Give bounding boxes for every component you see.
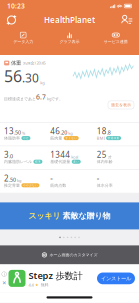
button[interactable]: - [93, 170, 139, 193]
staticText: 46 [50, 126, 60, 136]
staticText: 推定骨量 [4, 183, 20, 188]
staticText: 筋肉点数 [50, 183, 66, 188]
button[interactable]: - [46, 170, 93, 193]
staticText: 体重 [11, 60, 21, 66]
staticText: ⓘ [1, 271, 6, 277]
staticText: kg [40, 80, 44, 85]
staticText: やせ [23, 136, 29, 140]
staticText: 基礎代謝量 [50, 159, 70, 164]
staticText: kg [17, 178, 21, 183]
staticText: ★ [35, 283, 39, 287]
button[interactable]: グラフ表示 [46, 28, 93, 48]
staticText: .50 [14, 129, 21, 136]
staticText: 標準 [35, 160, 41, 163]
staticText: 1344 [50, 149, 70, 160]
staticText: 素敵な贈り物 [62, 211, 110, 221]
staticText: HealthPlanet [44, 15, 95, 25]
staticText: 才 [108, 155, 112, 159]
button[interactable]: ホーム画面のカスタマイズ [0, 245, 139, 264]
button[interactable]: Account [120, 12, 135, 27]
staticText: 10:23 [7, 2, 25, 10]
staticText: ✕ [2, 280, 6, 286]
button[interactable]: 13 [0, 123, 46, 146]
staticText: 3 [4, 149, 9, 160]
staticText: 過去を表示 [111, 102, 131, 107]
button[interactable]: 2 [0, 170, 46, 193]
button[interactable]: 3 [0, 146, 46, 169]
staticText: - [97, 173, 100, 184]
staticText: kg [68, 131, 72, 136]
staticText: 無料 [41, 282, 49, 287]
staticText: 体内年齢 [97, 159, 113, 164]
staticText: 体水分率 [97, 183, 113, 188]
staticText: 4.4 [28, 282, 33, 287]
staticText: 内臓脂肪レベル [4, 159, 32, 164]
staticText: ホーム画面のカスタマイズ [50, 252, 98, 257]
button[interactable]: Sync [4, 12, 19, 27]
staticText: 筋肉量 [50, 136, 62, 140]
staticText: .8 [107, 129, 111, 136]
staticText: .30 [22, 70, 39, 86]
staticText: 25 [97, 149, 107, 160]
button[interactable]: 46 [46, 123, 93, 146]
button[interactable]: 18 [93, 123, 139, 146]
staticText: % [22, 131, 25, 136]
staticText: kgです。 [46, 96, 63, 101]
button[interactable]: ⓘ [0, 264, 139, 292]
staticText: 体脂肪率 [4, 136, 20, 140]
staticText: 56 [4, 65, 22, 87]
staticText: .20 [60, 129, 67, 136]
staticText: 9/24(金) 20:45 [23, 60, 46, 66]
staticText: Stepz 歩数計 [28, 269, 82, 282]
button[interactable]: サービス連携 [93, 28, 139, 48]
staticText: 13 [4, 126, 14, 136]
staticText: サービス連携 [104, 39, 128, 44]
staticText: 18 [97, 126, 107, 136]
staticText: データ入力 [13, 39, 33, 44]
button[interactable]: 過去を表示 [108, 101, 134, 109]
staticText: インストール [101, 275, 131, 282]
staticText: 普通体重 [108, 136, 120, 140]
staticText: 2 [4, 173, 9, 184]
staticText: - [50, 173, 53, 184]
button[interactable]: 25 [93, 146, 139, 169]
staticText: kcal [71, 154, 78, 159]
button[interactable]: 1344 [46, 146, 93, 169]
staticText: .50 [9, 176, 16, 183]
staticText: グラフ表示 [59, 39, 79, 44]
staticText: 目標達成まであと [4, 96, 36, 101]
button[interactable]: スッキリ [0, 202, 139, 229]
staticText: .0 [9, 152, 13, 160]
staticText: 6.7 [36, 93, 46, 101]
staticText: スッキリ [28, 211, 60, 221]
staticText: すくない [65, 136, 77, 140]
staticText: 多い [73, 160, 79, 163]
staticText: やや少ない [23, 184, 38, 187]
button[interactable]: データ入力 [0, 28, 46, 48]
staticText: BMI [97, 135, 105, 141]
